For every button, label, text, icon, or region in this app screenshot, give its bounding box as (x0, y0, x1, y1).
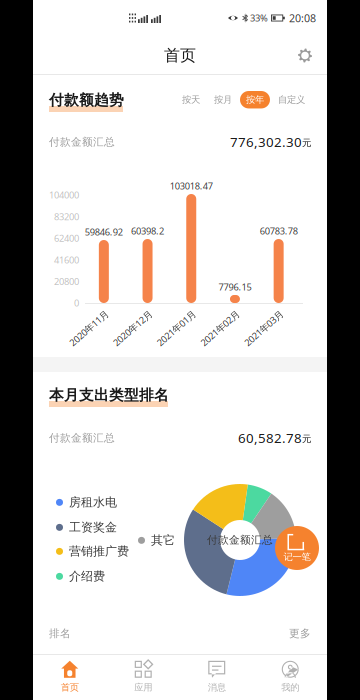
staticText: 付款金额汇总 (49, 135, 115, 148)
staticText: 记一笔 (283, 551, 310, 563)
staticText: 41600 (54, 254, 79, 266)
button[interactable]: 按天 (176, 91, 206, 108)
staticText: 介绍费 (69, 569, 105, 584)
staticText: 元 (302, 433, 311, 445)
staticText: 本月支出类型排名 (49, 386, 169, 404)
staticText: 付款金额汇总 (207, 533, 273, 546)
staticText: 排名 (49, 627, 71, 640)
staticText: 7796.15 (218, 281, 251, 293)
staticText: 2020年11月 (65, 322, 113, 334)
staticText: 60398.2 (131, 225, 164, 237)
staticText: 按年 (246, 94, 264, 105)
staticText: 更多 (289, 627, 311, 640)
staticText: 776,302.30 (230, 133, 302, 151)
staticText: 60,582.78 (238, 429, 302, 447)
staticText: 首页 (61, 682, 79, 693)
button[interactable]: 自定义 (272, 91, 311, 108)
staticText: 付款额趋势 (49, 91, 124, 109)
staticText: 应用 (134, 682, 152, 693)
staticText: 房租水电 (69, 495, 117, 510)
button[interactable]: 我的 (253, 654, 327, 700)
button[interactable]: 应用 (106, 654, 180, 700)
button[interactable]: 按月 (208, 91, 238, 108)
staticText: 其它 (151, 533, 175, 548)
staticText: 33% (250, 12, 268, 24)
staticText: 2021年03月 (240, 322, 288, 334)
staticText: 自定义 (278, 94, 305, 105)
staticText: 我的 (281, 682, 299, 693)
button[interactable]: 首页 (33, 654, 106, 700)
button[interactable]: 记一笔 (275, 526, 319, 570)
staticText: 83200 (54, 210, 79, 223)
staticText: 2021年02月 (196, 322, 244, 334)
button[interactable]: 更多 (289, 627, 311, 640)
staticText: 104000 (49, 189, 79, 201)
staticText: 2021年01月 (152, 322, 200, 334)
staticText: 按天 (182, 94, 200, 105)
staticText: 消息 (208, 682, 226, 693)
staticText: 0 (74, 297, 79, 309)
staticText: 营销推广费 (69, 544, 129, 559)
staticText: 20:08 (289, 11, 316, 25)
staticText: 103018.47 (170, 180, 213, 192)
staticText: 20800 (54, 275, 79, 288)
button[interactable]: 消息 (180, 654, 253, 700)
staticText: 付款金额汇总 (49, 431, 115, 444)
staticText: 工资奖金 (69, 520, 117, 535)
staticText: 2020年12月 (109, 322, 157, 334)
staticText: 元 (302, 137, 311, 149)
button[interactable]: Settings (291, 41, 319, 69)
staticText: 59846.92 (85, 226, 123, 238)
staticText: 首页 (164, 46, 196, 65)
button[interactable]: 按年 (240, 91, 270, 108)
staticText: 按月 (214, 94, 232, 105)
staticText: 60783.78 (260, 225, 298, 237)
staticText: 62400 (54, 232, 79, 244)
